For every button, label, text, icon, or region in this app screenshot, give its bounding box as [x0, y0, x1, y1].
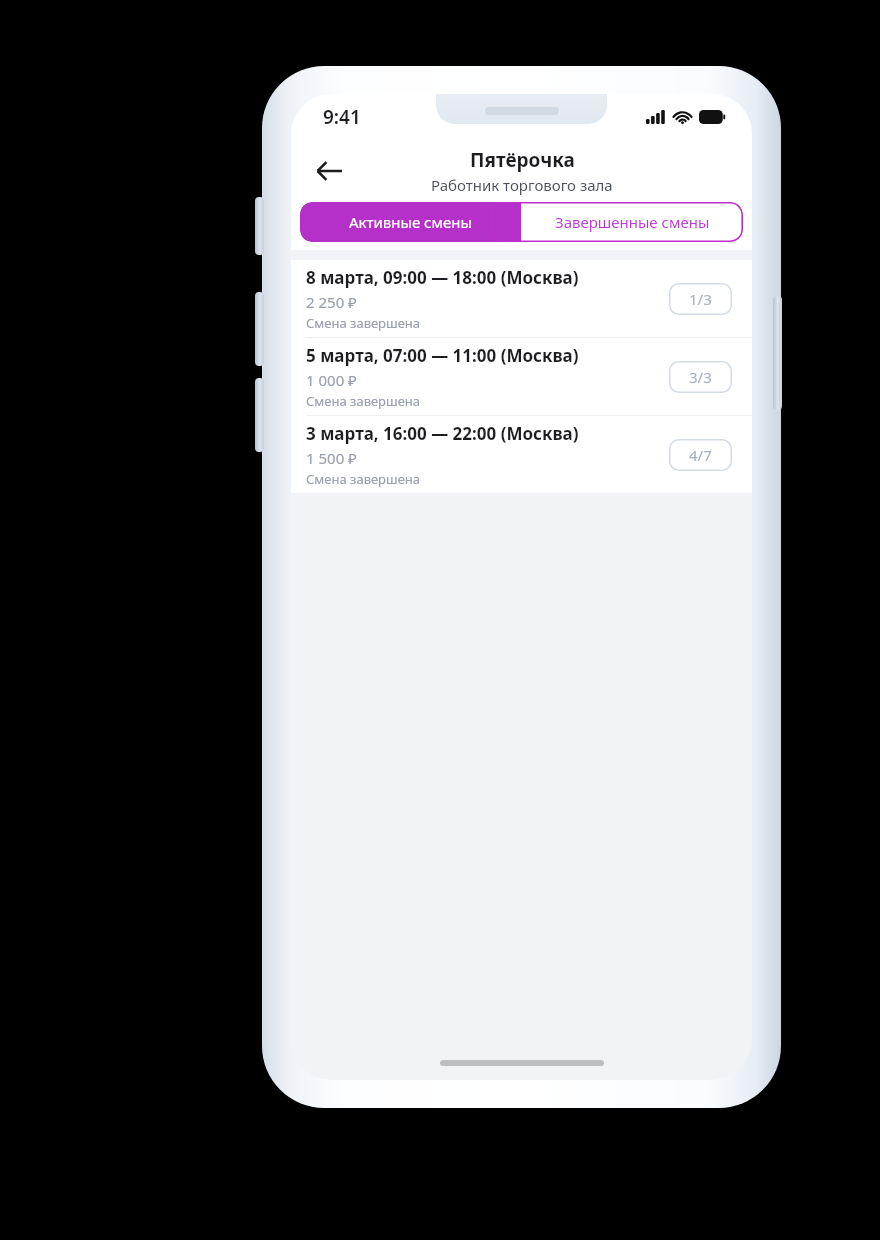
button[interactable]: Активные смены	[300, 202, 521, 242]
button[interactable]: 8 марта, 09:00 — 18:00 (Москва)	[291, 260, 752, 337]
button[interactable]: 3 марта, 16:00 — 22:00 (Москва)	[291, 416, 752, 493]
staticText: Пятёрочка	[470, 147, 575, 173]
staticText: Смена завершена	[306, 470, 421, 488]
staticText: 8 марта, 09:00 — 18:00 (Москва)	[306, 266, 579, 289]
staticText: 9:41	[323, 104, 361, 130]
staticText: 2 250 ₽	[306, 292, 357, 312]
staticText: 1 500 ₽	[306, 448, 357, 468]
button[interactable]: 5 марта, 07:00 — 11:00 (Москва)	[291, 338, 752, 415]
staticText: 1 000 ₽	[306, 370, 357, 390]
staticText: Смена завершена	[306, 314, 421, 332]
staticText: Работник торгового зала	[431, 175, 613, 195]
staticText: Смена завершена	[306, 392, 421, 410]
staticText: 4/7	[689, 445, 712, 465]
button[interactable]: Back	[303, 145, 355, 197]
staticText: 1/3	[689, 289, 712, 309]
staticText: Завершенные смены	[555, 212, 710, 232]
staticText: 3/3	[689, 367, 712, 387]
staticText: Активные смены	[349, 212, 472, 232]
staticText: 5 марта, 07:00 — 11:00 (Москва)	[306, 344, 579, 367]
button[interactable]: Завершенные смены	[521, 202, 743, 242]
staticText: 3 марта, 16:00 — 22:00 (Москва)	[306, 422, 579, 445]
